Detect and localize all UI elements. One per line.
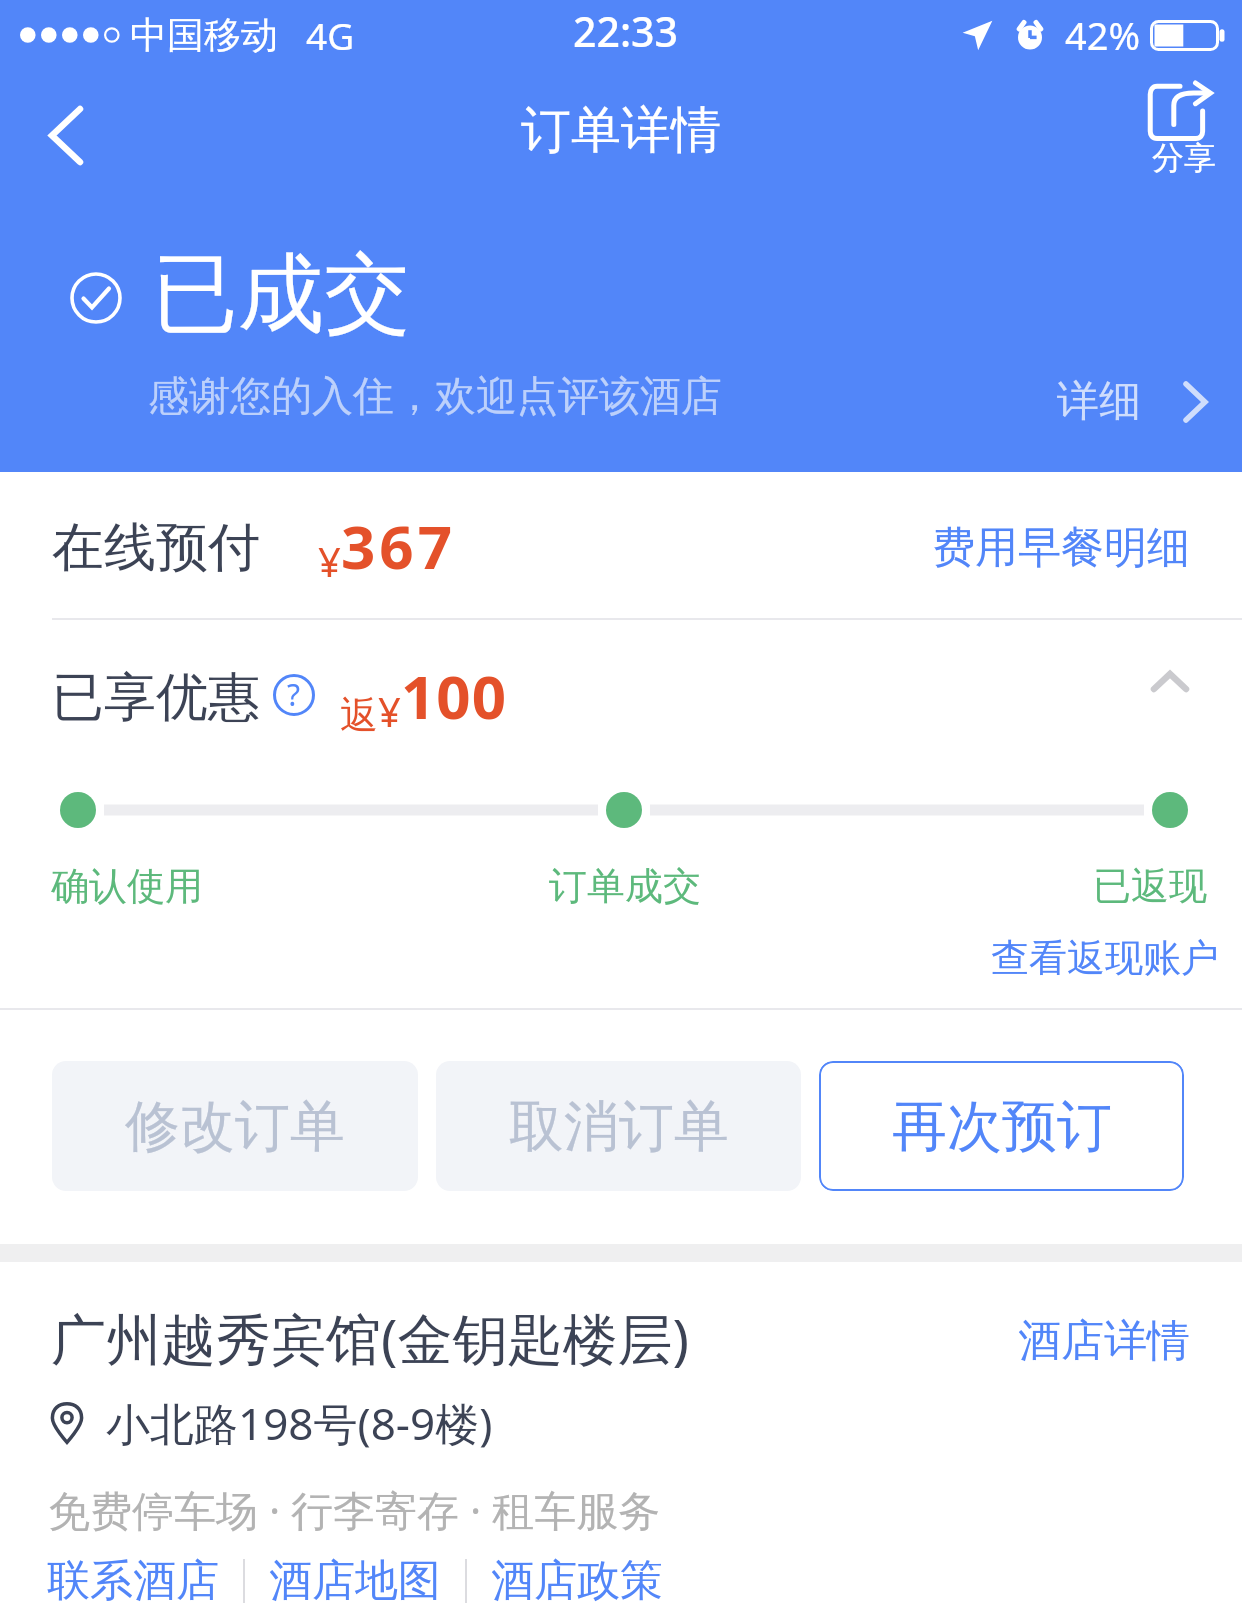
button[interactable]: 酒店详情 [1018,1314,1190,1368]
staticText: 100 [401,655,507,737]
staticText: ¥ [318,534,341,588]
staticText: ? [287,674,301,715]
button[interactable]: Collapse [1140,651,1200,711]
button[interactable]: 修改订单 [52,1061,418,1191]
staticText: 22:33 [573,3,678,59]
button[interactable]: 联系酒店 [47,1554,219,1608]
staticText: 再次预订 [892,1092,1112,1161]
button[interactable]: Share [1112,70,1242,200]
staticText: 免费停车场 · 行李寄存 · 租车服务 [48,1481,661,1538]
staticText: ¥ [378,684,401,738]
staticText: 小北路198号(8-9楼) [106,1393,493,1453]
button[interactable]: 酒店政策 [491,1554,663,1608]
staticText: 367 [341,505,456,587]
button[interactable]: 详细 [1057,375,1208,428]
button[interactable]: 酒店地图 [269,1554,441,1608]
staticText: 订单成交 [549,862,701,910]
staticText: 广州越秀宾馆(金钥匙楼层) [51,1300,689,1375]
staticText: 取消订单 [509,1092,729,1161]
staticText: 订单详情 [521,99,721,162]
staticText: 详细 [1057,375,1141,428]
staticText: 已享优惠 [52,665,260,731]
staticText: 在线预付 [52,515,260,581]
staticText: 修改订单 [125,1092,345,1161]
button[interactable]: 取消订单 [436,1061,801,1191]
staticText: 已成交 [152,240,410,348]
staticText: 确认使用 [51,862,203,910]
staticText: 中国移动 [130,12,278,59]
staticText: 返 [340,691,378,739]
button[interactable]: Back [26,95,106,175]
staticText: 感谢您的入住，欢迎点评该酒店 [148,371,722,423]
staticText: 42% [1065,9,1141,61]
button[interactable]: 再次预订 [819,1061,1184,1191]
staticText: 已返现 [1093,862,1207,910]
button[interactable]: Help [273,674,315,716]
staticText: 4G [306,10,355,60]
staticText: 分享 [1152,138,1216,178]
button[interactable]: 查看返现账户 [991,934,1219,982]
button[interactable]: 费用早餐明细 [932,521,1190,575]
